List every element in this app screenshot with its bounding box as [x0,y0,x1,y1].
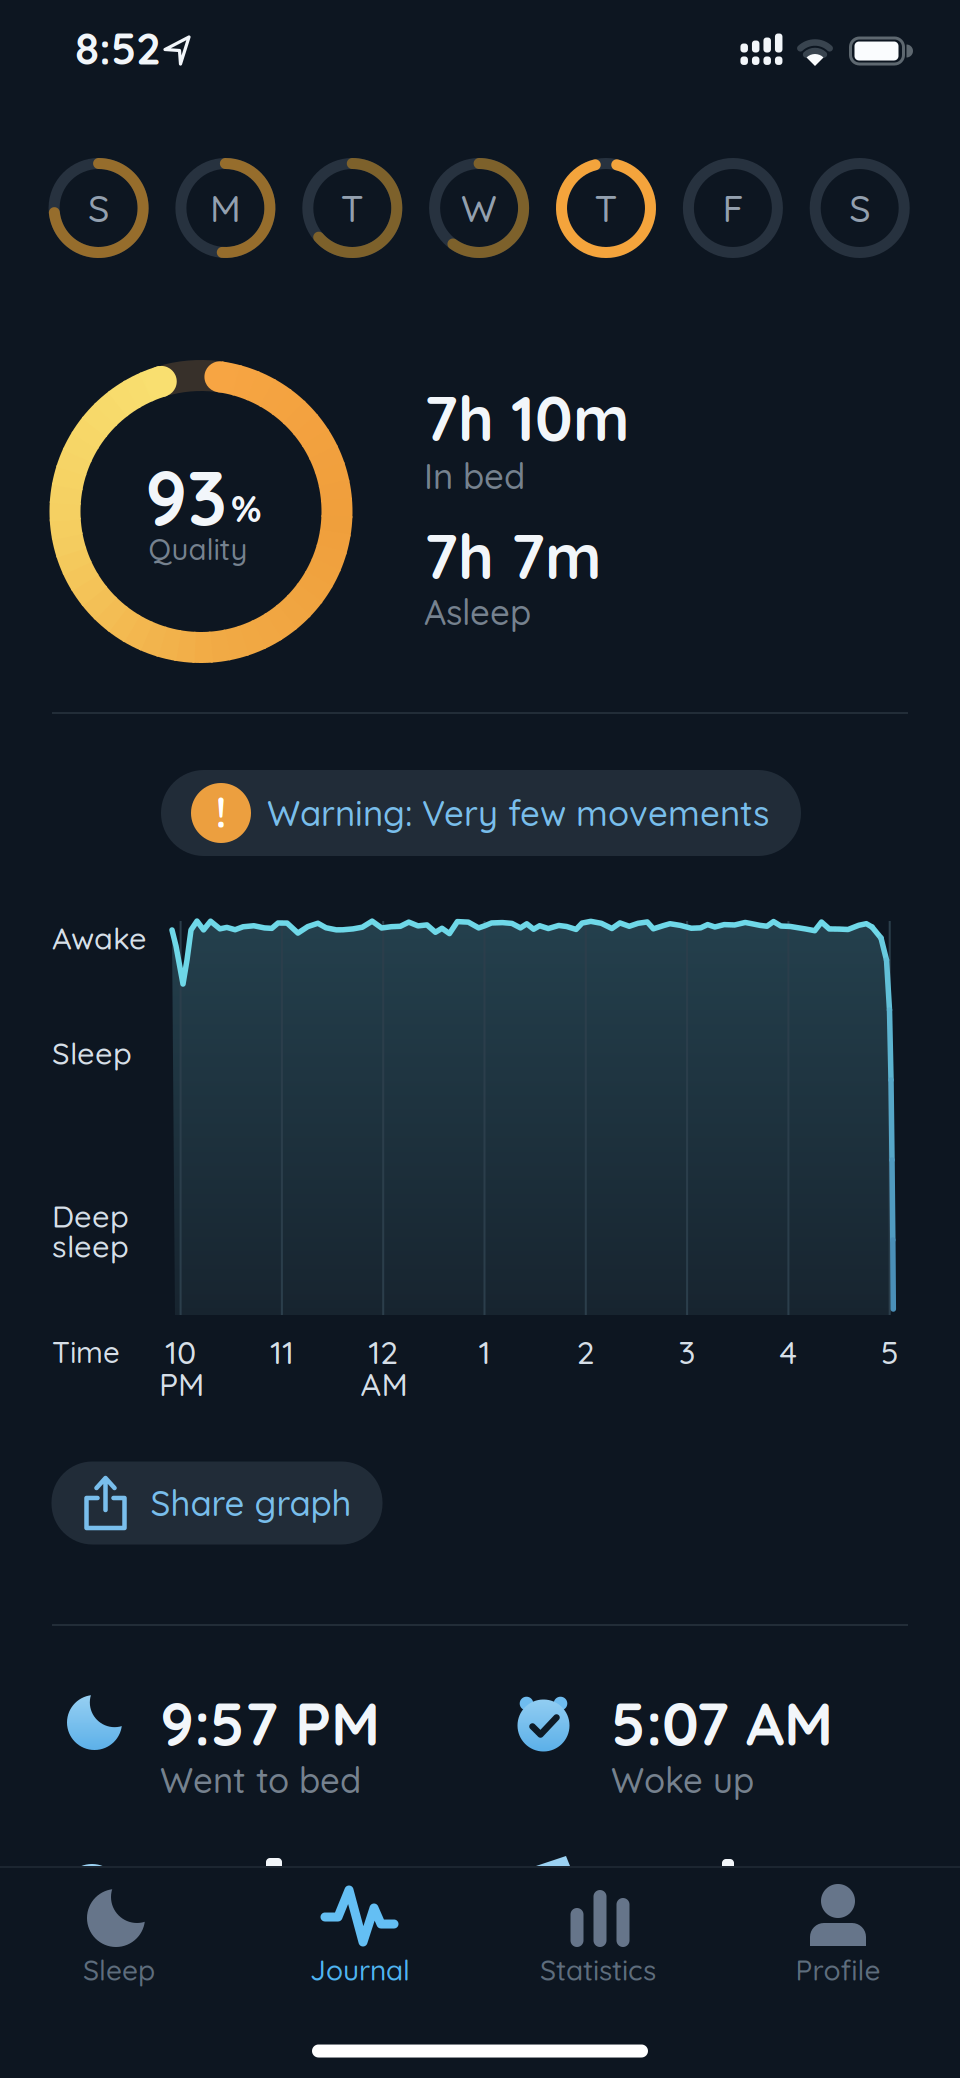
staticText: Warning: Very few movements [267,791,769,835]
staticText: % [231,485,261,531]
staticText: Time [52,1334,120,1370]
staticText: sleep [52,1227,129,1265]
button[interactable]: S [805,153,915,263]
button[interactable]: Share graph [51,1461,382,1544]
staticText: 10 [165,1332,196,1372]
staticText: Asleep [424,590,531,634]
staticText: 4 [779,1332,797,1372]
staticText: Woke up [611,1758,754,1802]
staticText: Deep [52,1197,129,1235]
staticText: In bed [424,454,525,498]
button[interactable]: M [170,153,280,263]
staticText: 2 [577,1332,595,1372]
staticText: Journal [310,1952,410,1987]
staticText: Went to bed [160,1758,361,1802]
staticText: Awake [52,919,147,957]
staticText: Share graph [150,1481,351,1525]
staticText: Sleep [83,1952,155,1987]
staticText: ! [215,786,226,838]
staticText: 8:52 [75,20,161,75]
staticText: Quality [148,531,247,567]
staticText: Statistics [540,1952,656,1987]
staticText: 7h 10m [424,380,630,456]
button[interactable]: Journal [240,1860,480,2000]
staticText: 9:57 PM [160,1685,380,1760]
staticText: Sleep [52,1034,132,1072]
button[interactable]: Profile [718,1860,958,2000]
staticText: 93 [145,450,227,544]
button[interactable]: T [551,153,661,263]
staticText: T [341,185,364,231]
staticText: S [88,185,109,231]
button[interactable]: S [44,153,154,263]
staticText: T [594,185,617,231]
staticText: 5:07 AM [611,1685,833,1760]
staticText: 12 [368,1332,398,1372]
staticText: PM [159,1364,204,1404]
button[interactable]: F [678,153,788,263]
button[interactable]: T [297,153,407,263]
staticText: 11 [270,1332,294,1372]
staticText: 1 [478,1332,490,1372]
staticText: 3 [679,1332,696,1372]
staticText: F [722,185,743,231]
staticText: S [849,185,870,231]
button[interactable]: W [424,153,534,263]
staticText: M [210,185,241,231]
staticText: W [461,185,497,231]
button[interactable]: Statistics [478,1860,718,2000]
staticText: 7h 7m [424,518,602,594]
staticText: AM [360,1364,407,1404]
staticText: Profile [795,1952,880,1987]
button[interactable]: ! [161,770,801,856]
staticText: 5 [881,1332,899,1372]
button[interactable]: Sleep [0,1860,239,2000]
